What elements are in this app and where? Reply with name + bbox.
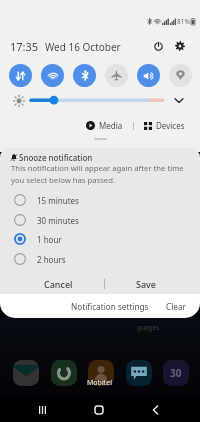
button[interactable]: Cancel xyxy=(16,274,100,294)
staticText: guages xyxy=(137,323,160,332)
staticText: Cancel xyxy=(44,278,73,290)
staticText: Save xyxy=(136,278,157,290)
button[interactable]: Save xyxy=(107,274,185,294)
button[interactable]: Media xyxy=(84,119,125,132)
button[interactable]: Clear xyxy=(163,297,189,316)
button[interactable]: Location xyxy=(169,64,192,87)
button[interactable]: Devices xyxy=(142,119,187,132)
button[interactable]: Back xyxy=(143,398,167,422)
button[interactable]: Settings xyxy=(170,36,190,56)
button[interactable]: 2 hours xyxy=(0,249,200,269)
staticText: Clear xyxy=(166,301,186,312)
button[interactable]: Notification settings xyxy=(68,297,152,316)
staticText: 17:35 xyxy=(10,39,39,54)
button[interactable]: Wi-Fi xyxy=(41,64,64,87)
button[interactable]: 15 minutes xyxy=(0,190,200,210)
button[interactable]: Mobile data xyxy=(9,64,32,87)
staticText: 1 hour xyxy=(37,234,62,245)
button[interactable]: Phone xyxy=(51,360,77,386)
staticText: Wed 16 October xyxy=(45,40,121,54)
button[interactable]: Email xyxy=(13,360,39,386)
staticText: Mobitel xyxy=(87,378,112,388)
button[interactable]: Sound xyxy=(137,64,160,87)
staticText: 2 hours xyxy=(37,254,66,265)
button[interactable]: Flight mode xyxy=(105,64,128,87)
staticText: This notification will appear again afte… xyxy=(11,163,184,186)
button[interactable]: 1 hour xyxy=(0,229,200,249)
button[interactable]: Contacts xyxy=(88,360,114,386)
staticText: Notification settings xyxy=(71,301,149,312)
staticText: Devices xyxy=(156,120,185,131)
button[interactable]: Bluetooth xyxy=(73,64,96,87)
staticText: 30 xyxy=(170,366,182,380)
staticText: 15 minutes xyxy=(37,195,79,206)
button[interactable]: Power off xyxy=(148,36,168,56)
button[interactable]: Messages xyxy=(126,360,152,386)
staticText: Snooze notification xyxy=(19,152,93,163)
staticText: 81% xyxy=(177,17,190,26)
button[interactable]: Home xyxy=(87,398,111,422)
button[interactable]: Recents xyxy=(30,398,54,422)
button[interactable]: Calendar xyxy=(163,360,189,386)
staticText: Media xyxy=(99,120,123,131)
button[interactable]: 30 minutes xyxy=(0,210,200,230)
button[interactable]: Expand xyxy=(171,92,187,108)
staticText: 30 minutes xyxy=(37,215,79,226)
